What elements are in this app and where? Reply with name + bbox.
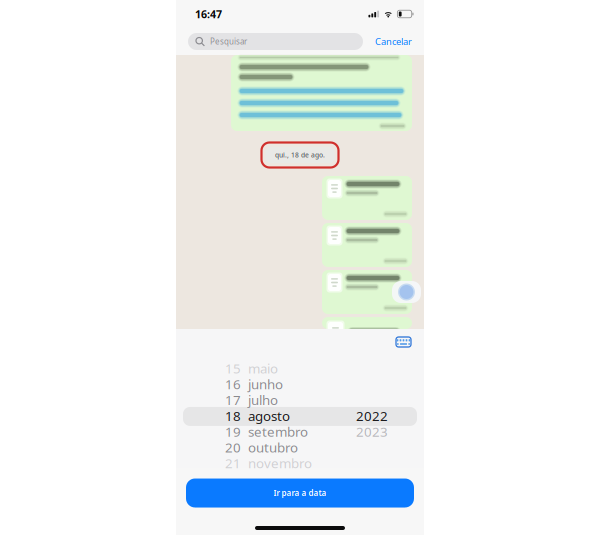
staticText: 2022 [356,407,388,425]
staticText: Pesquisar [210,36,247,47]
staticText: junho [248,375,283,393]
staticText: 16 [225,375,241,393]
staticText: setembro [248,423,308,440]
staticText: 21 [225,454,241,472]
staticText: agosto [248,407,290,425]
staticText: 17 [225,391,241,409]
staticText: 19 [225,423,241,440]
staticText: 20 [225,438,241,456]
staticText: Ir para a data [273,488,326,498]
staticText: 2023 [356,423,388,440]
staticText: 16:47 [195,7,222,21]
staticText: novembro [248,454,312,472]
button[interactable]: Cancelar [375,32,412,51]
button[interactable]: Ir para a data [186,478,414,507]
button[interactable]: Rolar para baixo [392,281,421,303]
button[interactable]: Mostrar teclado [392,333,415,351]
staticText: maio [248,359,278,377]
staticText: julho [248,391,278,409]
staticText: 18 [225,407,241,425]
staticText: qui., 18 de ago. [275,151,325,159]
staticText: 15 [225,359,241,377]
staticText: outubro [248,438,298,456]
staticText: Cancelar [375,35,412,48]
button[interactable]: Pesquisar [188,33,363,50]
